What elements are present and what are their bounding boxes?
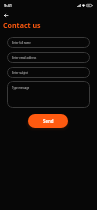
button[interactable]: Type message — [7, 81, 90, 108]
button[interactable]: Send — [28, 114, 68, 128]
staticText: Type message — [12, 86, 30, 90]
staticText: 9:41 — [4, 3, 12, 8]
button[interactable]: Enter subject — [7, 67, 90, 78]
staticText: Enter email address — [12, 56, 37, 60]
staticText: Send — [43, 118, 54, 124]
staticText: Contact us — [3, 20, 41, 30]
button[interactable]: Enter full name — [7, 37, 90, 48]
button[interactable]: Enter email address — [7, 52, 90, 63]
button[interactable]: Back — [0, 10, 11, 21]
staticText: Enter full name — [12, 41, 31, 45]
staticText: Enter subject — [12, 71, 28, 75]
